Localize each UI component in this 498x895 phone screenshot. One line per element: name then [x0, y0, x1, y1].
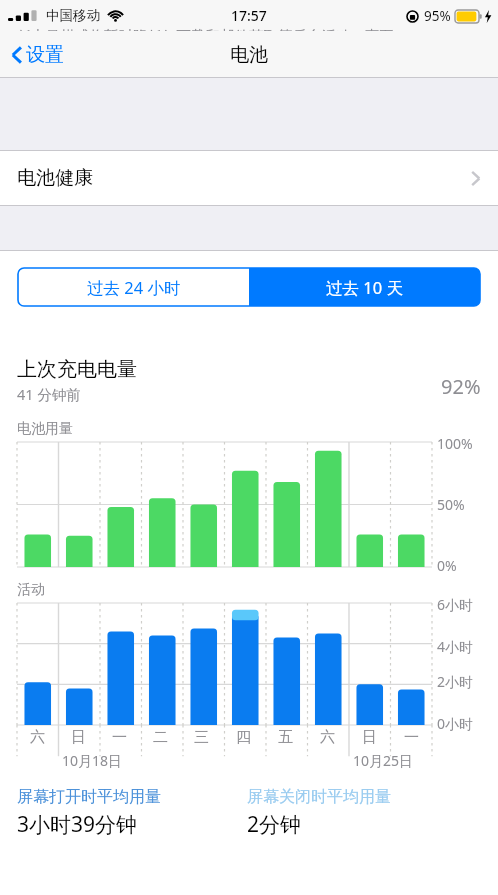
button[interactable]: 过去 10 天: [249, 268, 480, 306]
staticText: 95%: [424, 7, 451, 25]
staticText: 100%: [437, 434, 473, 453]
staticText: iPhone 完全充电。: [17, 58, 141, 78]
staticText: 六: [30, 728, 45, 747]
staticText: 6小时: [437, 595, 474, 614]
staticText: 过去 24 小时: [87, 276, 181, 299]
button[interactable]: 过去 24 小时: [18, 268, 249, 306]
staticText: 2小时: [437, 672, 474, 691]
staticText: 电池: [230, 43, 268, 67]
staticText: 屏幕打开时平均用量: [17, 787, 161, 807]
staticText: 17:57: [231, 6, 267, 25]
staticText: 日: [71, 728, 86, 747]
staticText: 三: [194, 728, 209, 747]
staticText: 一: [404, 728, 419, 747]
staticText: 2分钟: [247, 810, 302, 839]
staticText: 二: [153, 728, 168, 747]
staticText: 4小时: [437, 637, 474, 656]
button[interactable]: 电池健康: [0, 150, 498, 206]
staticText: 活动: [17, 581, 45, 599]
staticText: 设置: [26, 43, 64, 67]
staticText: 电池用量: [17, 420, 73, 438]
staticText: 92%: [441, 373, 481, 400]
staticText: 四: [236, 728, 251, 747]
staticText: 一: [112, 728, 127, 747]
staticText: 10月18日: [62, 751, 123, 770]
button[interactable]: 返回 设置: [10, 31, 498, 78]
staticText: 10月25日: [353, 751, 414, 770]
staticText: 日: [362, 728, 377, 747]
staticText: 过去 10 天: [326, 276, 403, 299]
staticText: 低电量模式将暂时降低如下载和邮件获取等后台活动，直至: [17, 27, 394, 45]
staticText: 3小时39分钟: [17, 810, 138, 839]
staticText: 41 分钟前: [17, 384, 81, 404]
staticText: 50%: [437, 495, 465, 514]
staticText: 0%: [437, 556, 457, 575]
staticText: 中国移动: [46, 7, 100, 24]
staticText: 六: [320, 728, 335, 747]
staticText: 电池健康: [17, 166, 93, 190]
staticText: 屏幕关闭时平均用量: [247, 787, 391, 807]
staticText: 五: [278, 728, 293, 747]
staticText: 0小时: [437, 714, 474, 733]
staticText: 上次充电电量: [17, 357, 137, 382]
